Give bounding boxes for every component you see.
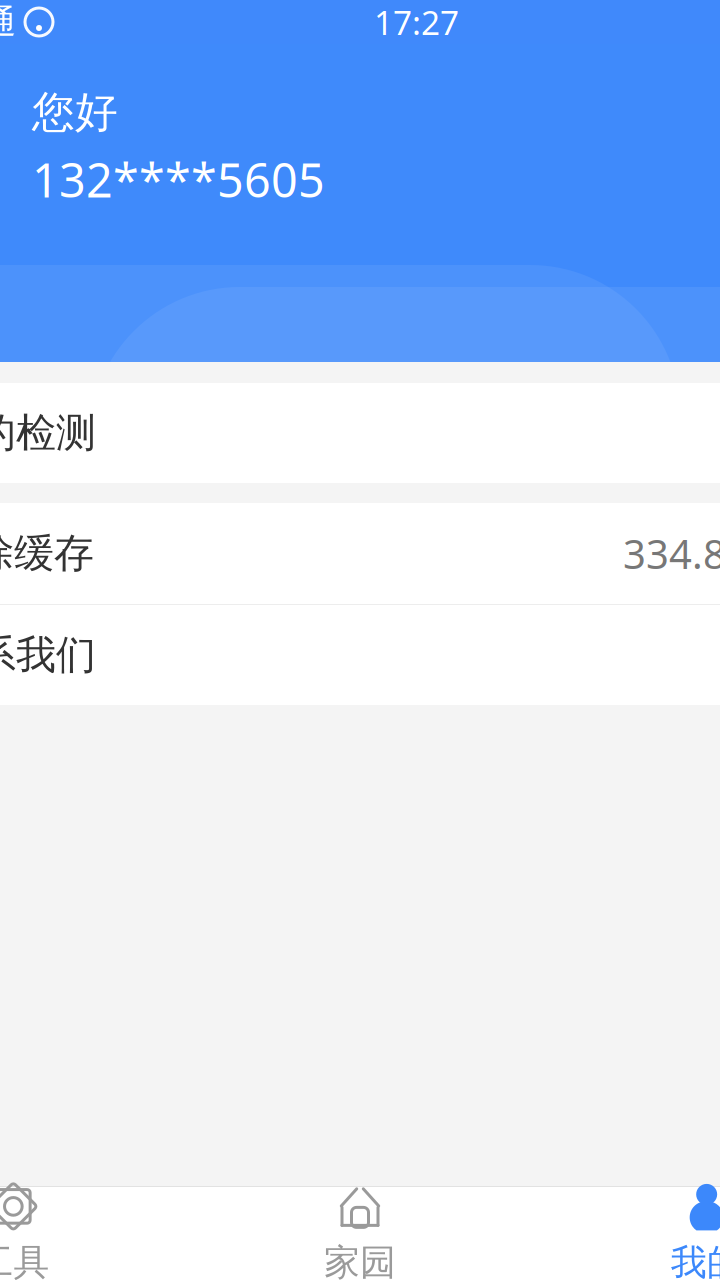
staticText: 132****5605 [32,148,325,210]
staticText: 我的检测 [0,408,96,457]
button[interactable]: 检 [0,383,720,483]
staticText: 联系我们 [0,630,96,679]
button[interactable]: 家园 [187,1187,533,1280]
button[interactable]: 工具 [0,1187,187,1280]
staticText: 工具 [0,1240,49,1280]
staticText: 家园 [324,1240,396,1280]
staticText: 17:27 [374,0,459,44]
button[interactable]: 我的 [533,1187,720,1280]
staticText: 清除缓存 [0,529,94,578]
staticText: 334.88KB [623,527,720,580]
button[interactable]: 清除缓存 [0,503,720,604]
staticText: 我的 [671,1240,720,1280]
staticText: 您好 [32,86,118,138]
button[interactable]: i [0,605,720,705]
staticText: 中国联通 [0,1,16,42]
